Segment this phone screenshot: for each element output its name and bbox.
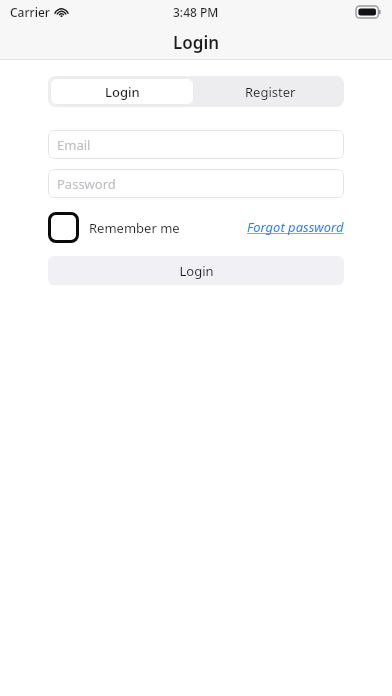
button[interactable]: Email (48, 130, 344, 159)
staticText: Carrier (10, 4, 50, 20)
button[interactable]: Login (50, 78, 194, 105)
button[interactable]: Password (48, 169, 344, 198)
button[interactable]: Remember me checkbox (48, 212, 180, 243)
staticText: Register (245, 83, 296, 101)
staticText: Login (173, 31, 220, 54)
staticText: Email (57, 136, 91, 154)
staticText: 3:48 PM (173, 4, 219, 20)
staticText: Login (105, 83, 140, 101)
staticText: Password (57, 175, 116, 193)
staticText: Login (179, 262, 214, 280)
other: Remember me checkbox (48, 212, 79, 243)
staticText: Remember me (89, 219, 180, 237)
staticText: Forgot password (247, 218, 344, 236)
button[interactable]: Forgot password (247, 218, 344, 236)
button[interactable]: Login (48, 256, 344, 285)
button[interactable]: Register (196, 76, 344, 107)
